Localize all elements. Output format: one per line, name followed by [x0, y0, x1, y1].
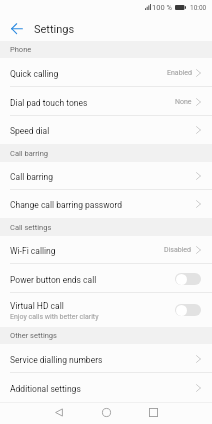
staticText: Quick calling: [10, 69, 59, 79]
button[interactable]: Back: [46, 402, 72, 423]
staticText: None: [175, 98, 192, 106]
staticText: 100 %: [152, 3, 172, 12]
button[interactable]: Call barring: [0, 162, 212, 190]
staticText: Phone: [10, 45, 32, 54]
staticText: Additional settings: [10, 384, 81, 394]
staticText: Other settings: [10, 331, 57, 340]
button[interactable]: Change call barring password: [0, 190, 212, 218]
staticText: Enabled: [167, 69, 192, 77]
button[interactable]: Virtual HD call: [0, 293, 212, 327]
button[interactable]: Toggle: [175, 273, 201, 285]
staticText: 10:00: [190, 4, 207, 12]
staticText: Dial pad touch tones: [10, 98, 88, 108]
staticText: Change call barring password: [10, 200, 123, 210]
button[interactable]: Recents: [140, 402, 166, 423]
button[interactable]: Power button ends call: [0, 264, 212, 293]
staticText: Enjoy calls with better clarity: [10, 313, 99, 321]
button[interactable]: Wi-Fi calling: [0, 236, 212, 264]
staticText: Settings: [34, 23, 75, 36]
staticText: Call barring: [10, 172, 54, 182]
staticText: Virtual HD call: [10, 301, 64, 311]
staticText: Speed dial: [10, 126, 50, 136]
button[interactable]: Toggle: [175, 304, 201, 316]
button[interactable]: Dial pad touch tones: [0, 87, 212, 116]
button[interactable]: Quick calling: [0, 58, 212, 87]
staticText: Power button ends call: [10, 275, 97, 285]
staticText: Service dialling numbers: [10, 355, 103, 365]
button[interactable]: Speed dial: [0, 116, 212, 144]
button[interactable]: Additional settings: [0, 373, 212, 402]
button[interactable]: Back: [0, 14, 33, 41]
staticText: Disabled: [164, 246, 192, 254]
staticText: Call settings: [10, 223, 52, 232]
staticText: Call barring: [10, 149, 49, 158]
button[interactable]: Home: [93, 402, 119, 423]
button[interactable]: Service dialling numbers: [0, 344, 212, 373]
staticText: Wi-Fi calling: [10, 246, 56, 256]
